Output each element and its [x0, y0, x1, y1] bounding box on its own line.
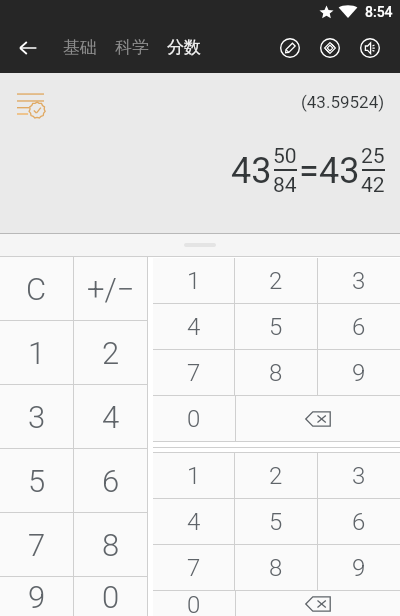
staticText: 0 [102, 579, 120, 615]
button[interactable]: 0 [74, 577, 147, 616]
staticText: 8 [102, 527, 120, 563]
staticText: 4 [187, 508, 201, 536]
button[interactable]: 5 [0, 449, 73, 512]
staticText: 科学 [115, 37, 149, 58]
button[interactable]: 8 [74, 513, 147, 576]
staticText: 2 [269, 267, 283, 295]
staticText: 0 [187, 405, 201, 433]
button[interactable]: 6 [318, 304, 400, 349]
staticText: 1 [28, 335, 46, 371]
button[interactable]: 6 [74, 449, 147, 512]
staticText: 9 [28, 579, 46, 615]
button[interactable]: Formula style [316, 34, 344, 62]
staticText: 25 [361, 144, 385, 169]
staticText: 7 [187, 359, 201, 387]
staticText: 42 [361, 173, 385, 198]
staticText: 1 [187, 267, 201, 295]
staticText: 8:54 [365, 4, 393, 20]
button[interactable]: 1 [153, 453, 234, 498]
button[interactable]: 2 [235, 453, 317, 498]
staticText: 4 [187, 313, 201, 341]
button[interactable]: 2 [235, 258, 317, 303]
button[interactable]: 8 [235, 350, 317, 395]
button[interactable]: Backspace [236, 591, 400, 616]
staticText: 43 [231, 150, 272, 192]
staticText: 5 [269, 313, 283, 341]
button[interactable]: 分数 [164, 31, 204, 64]
staticText: (43.59524) [301, 92, 385, 112]
button[interactable]: C [0, 257, 73, 320]
button[interactable]: 2 [74, 321, 147, 384]
button[interactable]: 9 [318, 350, 400, 395]
staticText: 7 [28, 527, 46, 563]
staticText: 5 [269, 508, 283, 536]
staticText: 6 [352, 508, 366, 536]
staticText: 8 [269, 359, 283, 387]
button[interactable]: 1 [0, 321, 73, 384]
button[interactable]: 7 [153, 545, 234, 590]
button[interactable]: 3 [318, 258, 400, 303]
staticText: 50 [273, 144, 297, 169]
button[interactable]: 4 [74, 385, 147, 448]
staticText: 6 [102, 463, 120, 499]
staticText: 基础 [63, 37, 97, 58]
button[interactable]: 5 [235, 499, 317, 544]
button[interactable]: 科学 [112, 31, 152, 64]
staticText: 1 [187, 462, 201, 490]
staticText: 4 [102, 399, 120, 435]
button[interactable]: 9 [0, 577, 73, 616]
button[interactable]: 4 [153, 304, 234, 349]
staticText: 84 [273, 173, 297, 198]
staticText: 3 [352, 267, 366, 295]
staticText: 2 [102, 335, 120, 371]
staticText: 43 [319, 150, 360, 192]
button[interactable]: 9 [318, 545, 400, 590]
staticText: 5 [28, 463, 46, 499]
button[interactable]: Backspace [236, 396, 400, 441]
staticText: 分数 [167, 37, 201, 58]
staticText: +/− [87, 271, 135, 307]
button[interactable]: 1 [153, 258, 234, 303]
button[interactable]: 8 [235, 545, 317, 590]
button[interactable]: History [13, 86, 47, 120]
staticText: 6 [352, 313, 366, 341]
staticText: 3 [352, 462, 366, 490]
button[interactable]: +/− [74, 257, 147, 320]
button[interactable]: 3 [318, 453, 400, 498]
staticText: 7 [187, 554, 201, 582]
button[interactable]: 3 [0, 385, 73, 448]
button[interactable]: 7 [153, 350, 234, 395]
button[interactable]: 0 [153, 591, 235, 616]
button[interactable]: 0 [153, 396, 235, 441]
staticText: 9 [352, 359, 366, 387]
button[interactable]: Edit [276, 34, 304, 62]
staticText: C [26, 271, 47, 307]
staticText: 9 [352, 554, 366, 582]
staticText: 8 [269, 554, 283, 582]
staticText: 3 [28, 399, 46, 435]
button[interactable]: 5 [235, 304, 317, 349]
button[interactable]: 4 [153, 499, 234, 544]
staticText: 0 [187, 591, 201, 616]
button[interactable]: 基础 [60, 31, 100, 64]
button[interactable]: Sound [356, 34, 384, 62]
staticText: = [299, 150, 319, 192]
button[interactable]: Back [9, 29, 46, 66]
button[interactable]: 6 [318, 499, 400, 544]
staticText: 2 [269, 462, 283, 490]
button[interactable]: 7 [0, 513, 73, 576]
